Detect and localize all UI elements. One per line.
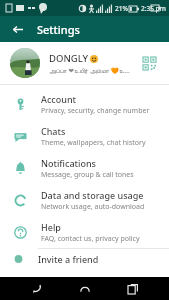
button[interactable]: Profile photo <box>0 42 169 84</box>
button[interactable]: Back <box>7 19 27 39</box>
button[interactable]: Help <box>0 216 169 248</box>
staticText: அப்பா ❤️உயிர் அம்மா 🧡உ... <box>49 66 130 75</box>
button[interactable]: Back <box>23 277 49 300</box>
button[interactable]: Invite a friend <box>0 253 169 263</box>
staticText: 21% <box>115 4 128 13</box>
button[interactable]: Data and storage usage <box>0 184 169 216</box>
staticText: Data and storage usage <box>41 189 144 201</box>
staticText: 2:35 pm <box>141 4 166 13</box>
button[interactable]: Account <box>0 88 169 120</box>
staticText: FAQ, contact us, privacy policy <box>41 234 140 244</box>
button[interactable]: Chats <box>0 120 169 152</box>
staticText: Network usage, auto-download <box>41 202 145 212</box>
staticText: Privacy, security, change number <box>41 106 150 116</box>
staticText: Settings <box>37 22 80 37</box>
staticText: Account <box>41 93 76 105</box>
staticText: Theme, wallpapers, chat history <box>41 138 146 148</box>
staticText: DONGLY <box>49 52 89 65</box>
button[interactable]: QR code <box>139 53 159 73</box>
staticText: Chats <box>41 125 66 137</box>
button[interactable]: Recent apps <box>120 277 146 300</box>
staticText: Invite a friend <box>38 253 99 263</box>
button[interactable]: Home <box>72 277 98 300</box>
button[interactable]: Notifications <box>0 152 169 184</box>
button[interactable]: Profile photo <box>10 48 40 78</box>
staticText: Message, group & call tones <box>41 170 134 180</box>
staticText: Notifications <box>41 157 96 169</box>
staticText: Help <box>41 221 61 233</box>
